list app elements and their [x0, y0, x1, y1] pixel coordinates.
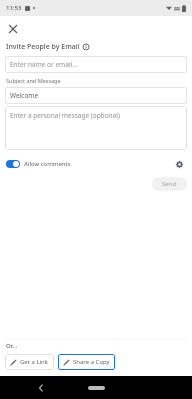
button[interactable]: Enter a personal message (optional) [5, 106, 187, 150]
staticText: Subject and Message [6, 77, 61, 84]
staticText: Share a Copy [73, 358, 110, 366]
button[interactable]: Send [152, 177, 187, 191]
button[interactable]: Settings [172, 157, 186, 171]
staticText: Invite People by Email [6, 42, 80, 52]
button[interactable]: Share a Copy [58, 354, 115, 370]
button[interactable]: Close [0, 16, 26, 42]
staticText: Enter name or email... [10, 60, 78, 69]
staticText: Or... [6, 342, 18, 350]
staticText: Enter a personal message (optional) [10, 111, 120, 120]
staticText: Welcome [10, 91, 39, 100]
staticText: Allow comments [24, 160, 71, 168]
button[interactable]: Welcome [5, 87, 187, 104]
staticText: Get a Link [20, 358, 49, 366]
button[interactable]: Home [88, 386, 105, 390]
button[interactable]: Allow comments [6, 160, 71, 168]
button[interactable]: Back [34, 381, 48, 395]
staticText: 11:53 [6, 4, 22, 12]
button[interactable]: Get a Link [5, 354, 54, 370]
staticText: Send [162, 180, 177, 188]
button[interactable]: Enter name or email... [5, 56, 187, 73]
